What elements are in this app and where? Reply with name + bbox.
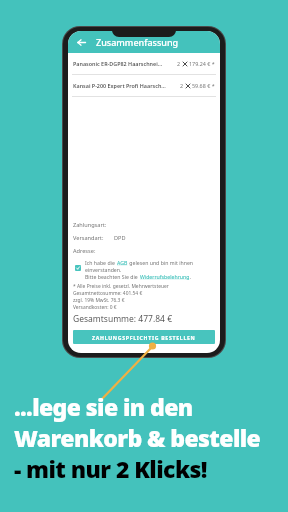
staticText: ...lege sie in den bbox=[14, 391, 193, 422]
staticText: Zusammenfassung bbox=[96, 36, 179, 48]
staticText: Gesamtsumme: 477.84 € bbox=[73, 313, 173, 325]
staticText: Versandkosten: 0 € bbox=[73, 304, 117, 311]
staticText: Adresse: bbox=[73, 247, 96, 255]
staticText: gelesen und bin mit ihnen bbox=[128, 259, 194, 266]
staticText: Widerrufsbelehrung bbox=[140, 273, 190, 280]
staticText: Warenkorb & bestelle bbox=[14, 422, 261, 453]
staticText: Panasonic ER-DGP82 Haarschnei... bbox=[73, 60, 174, 67]
staticText: Zahlungsart: bbox=[73, 221, 107, 229]
button[interactable]: Kansai P-200 Expert Profi Haarsch... bbox=[68, 75, 220, 96]
staticText: Versandart: bbox=[73, 234, 104, 242]
staticText: AGB bbox=[117, 259, 128, 266]
staticText: 59.68 € * bbox=[192, 82, 215, 89]
staticText: . bbox=[190, 273, 192, 280]
staticText: * Alle Preise inkl. gesetzl. Mehrwertste… bbox=[73, 283, 169, 290]
button[interactable]: AGB akzeptiert bbox=[75, 265, 81, 271]
staticText: 2 bbox=[177, 60, 181, 67]
button[interactable]: Panasonic ER-DGP82 Haarschnei... bbox=[68, 53, 220, 74]
staticText: 2 bbox=[180, 82, 184, 89]
staticText: ZAHLUNGSPFLICHTIG BESTELLEN bbox=[92, 334, 196, 341]
staticText: - mit nur 2 Klicks! bbox=[14, 453, 207, 484]
staticText: Ich habe die bbox=[85, 259, 117, 266]
staticText: einverstanden. bbox=[85, 266, 122, 273]
button[interactable]: Back bbox=[74, 35, 88, 49]
staticText: 179.24 € * bbox=[189, 60, 215, 67]
staticText: Bitte beachten Sie die bbox=[85, 273, 140, 280]
staticText: DPD bbox=[114, 234, 126, 242]
staticText: zzgl. 19% MwSt. 76.3 € bbox=[73, 297, 125, 304]
staticText: Gesamtnettosumme: 401.54 € bbox=[73, 290, 143, 297]
staticText: Kansai P-200 Expert Profi Haarsch... bbox=[73, 82, 177, 89]
button[interactable]: ZAHLUNGSPFLICHTIG BESTELLEN bbox=[73, 330, 215, 344]
